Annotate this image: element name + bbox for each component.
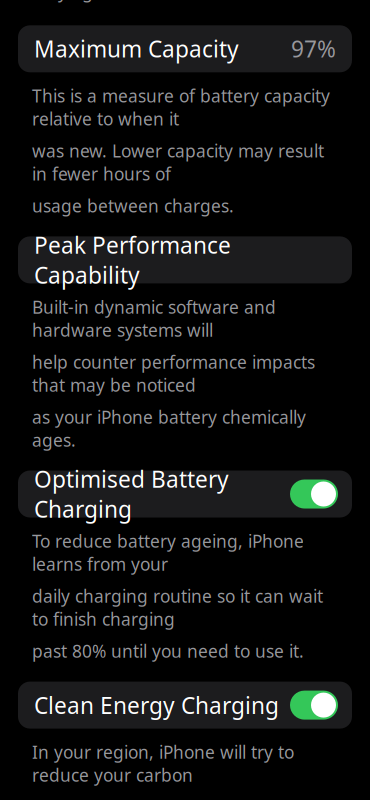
button[interactable]: Peak Performance Capability: [18, 236, 352, 283]
staticText: In your region, iPhone will try to reduc…: [32, 741, 294, 787]
staticText: they age.: [32, 0, 113, 3]
staticText: Peak Performance Capability: [34, 230, 231, 290]
staticText: 97%: [291, 34, 336, 64]
button[interactable]: Clean Energy Charging: [18, 682, 352, 729]
staticText: usage between charges.: [32, 194, 234, 217]
button[interactable]: Optimised Battery Charging: [18, 470, 352, 517]
staticText: Optimised Battery Charging: [34, 464, 229, 524]
staticText: Clean Energy Charging: [34, 690, 279, 720]
staticText: was new. Lower capacity may result in fe…: [32, 139, 324, 185]
staticText: Maximum Capacity: [34, 34, 239, 64]
staticText: This is a measure of battery capacity re…: [32, 84, 330, 130]
staticText: To reduce battery ageing, iPhone learns …: [32, 529, 304, 575]
staticText: Built-in dynamic software and hardware s…: [32, 295, 276, 341]
staticText: as your iPhone battery chemically ages.: [32, 405, 306, 451]
staticText: daily charging routine so it can wait to…: [32, 584, 323, 630]
staticText: past 80% until you need to use it.: [32, 640, 304, 663]
staticText: help counter performance impacts that ma…: [32, 350, 315, 396]
